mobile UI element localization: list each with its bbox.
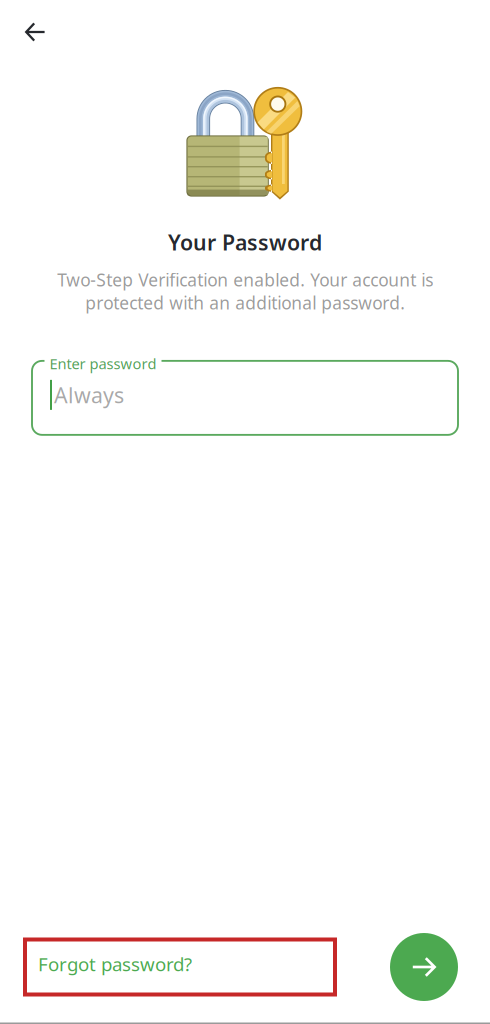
staticText: Your Password [168, 228, 322, 256]
staticText: Always [54, 381, 124, 409]
staticText: Forgot password? [38, 952, 192, 976]
staticText: Two-Step Verification enabled. Your acco… [57, 268, 433, 314]
button[interactable]: Forgot password? [25, 939, 335, 994]
staticText: Enter password [49, 354, 156, 373]
button[interactable]: Back [0, 0, 61, 58]
button[interactable]: Continue [390, 933, 458, 1001]
